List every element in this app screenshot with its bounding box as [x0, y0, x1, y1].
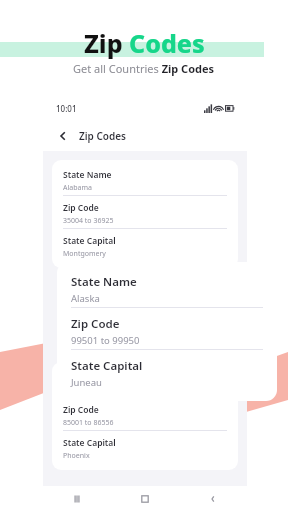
staticText: Zip Code — [71, 316, 120, 332]
button[interactable]: Back — [179, 486, 247, 512]
button[interactable]: State Name — [52, 362, 238, 470]
staticText: Zip Code — [63, 202, 99, 214]
button[interactable]: Back — [55, 128, 71, 144]
button[interactable]: Home — [111, 486, 179, 512]
staticText: Zip Code — [63, 404, 99, 416]
staticText: 85001 to 86556 — [63, 418, 114, 428]
staticText: 35004 to 36925 — [63, 216, 114, 226]
staticText: Alabama — [63, 183, 92, 193]
staticText: State Capital — [63, 437, 116, 449]
staticText: Alaska — [71, 292, 100, 305]
staticText: Arizona — [63, 385, 88, 395]
staticText: Get all Countries Zip Codes — [73, 61, 215, 76]
button[interactable]: Recents — [43, 486, 111, 512]
staticText: State Name — [63, 371, 112, 383]
staticText: 99501 to 99950 — [71, 334, 140, 347]
staticText: Zip Codes — [79, 129, 127, 143]
staticText: State Capital — [71, 358, 143, 374]
staticText: Zip Codes — [84, 26, 205, 60]
staticText: Montgomery — [63, 249, 106, 259]
staticText: State Name — [63, 169, 112, 181]
staticText: State Capital — [63, 235, 116, 247]
staticText: 10:01 — [56, 103, 77, 114]
staticText: State Name — [71, 274, 137, 290]
staticText: Phoenix — [63, 451, 90, 461]
button[interactable]: State Name — [52, 160, 238, 268]
staticText: Juneau — [71, 376, 102, 389]
button[interactable]: State Name — [57, 262, 277, 401]
